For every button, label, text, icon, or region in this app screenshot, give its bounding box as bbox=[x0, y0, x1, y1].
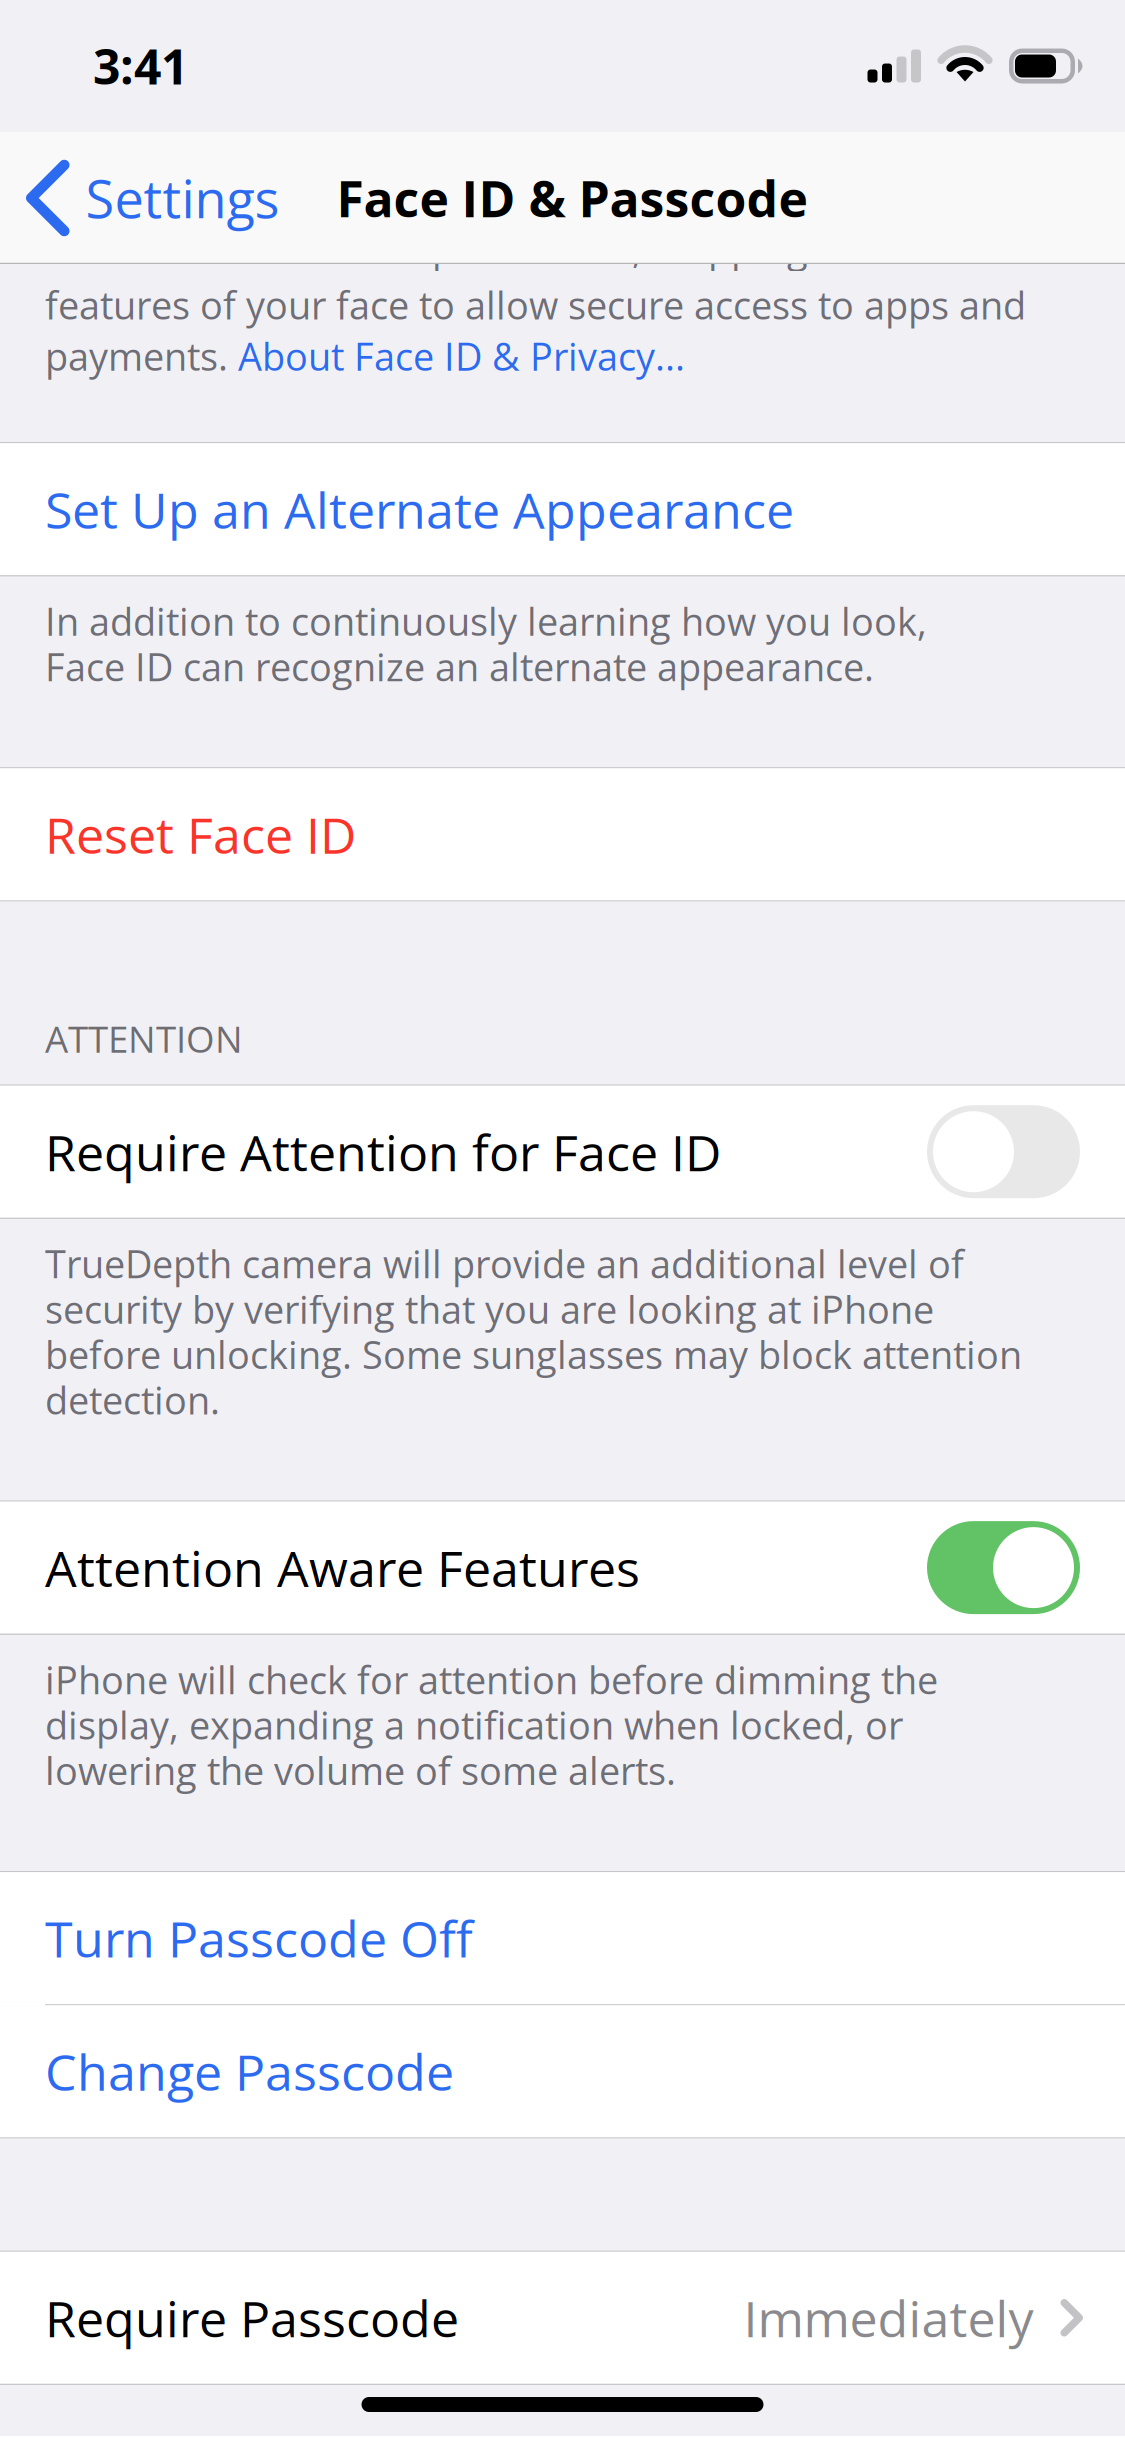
staticText: payments. bbox=[45, 333, 238, 379]
button[interactable]: Turn Passcode Off bbox=[0, 1872, 1125, 2004]
staticText: Immediately bbox=[743, 2284, 1033, 2352]
staticText: iPhone will check for attention before d… bbox=[45, 1657, 938, 1793]
staticText: Settings bbox=[85, 162, 279, 234]
button[interactable]: Require Attention for Face ID bbox=[0, 1086, 1125, 1218]
staticText: Attention Aware Features bbox=[45, 1533, 640, 1602]
staticText: 3:41 bbox=[93, 33, 188, 99]
staticText: ATTENTION bbox=[45, 1014, 243, 1063]
staticText: Require Passcode bbox=[45, 2284, 459, 2352]
staticText: Set Up an Alternate Appearance bbox=[45, 475, 794, 543]
staticText: Face ID & Passcode bbox=[336, 164, 807, 232]
staticText: Reset Face ID bbox=[45, 800, 356, 868]
staticText: In addition to continuously learning how… bbox=[45, 598, 927, 689]
button[interactable]: Reset Face ID bbox=[0, 768, 1125, 900]
button[interactable]: Settings bbox=[0, 132, 293, 264]
button[interactable]: Change Passcode bbox=[0, 2005, 1125, 2137]
staticText: Change Passcode bbox=[45, 2037, 454, 2105]
staticText: Face ID uses a TrueDepth camera, mapping bbox=[45, 226, 808, 271]
button[interactable]: Attention Aware Features bbox=[0, 1502, 1125, 1634]
button[interactable]: Set Up an Alternate Appearance bbox=[0, 443, 1125, 575]
staticText: Turn Passcode Off bbox=[45, 1904, 473, 1972]
staticText: features of your face to allow secure ac… bbox=[45, 282, 1026, 327]
staticText: Require Attention for Face ID bbox=[45, 1118, 721, 1186]
staticText: About Face ID & Privacy... bbox=[238, 333, 685, 379]
staticText: TrueDepth camera will provide an additio… bbox=[45, 1241, 1022, 1422]
button[interactable]: Require Passcode bbox=[0, 2252, 1125, 2384]
